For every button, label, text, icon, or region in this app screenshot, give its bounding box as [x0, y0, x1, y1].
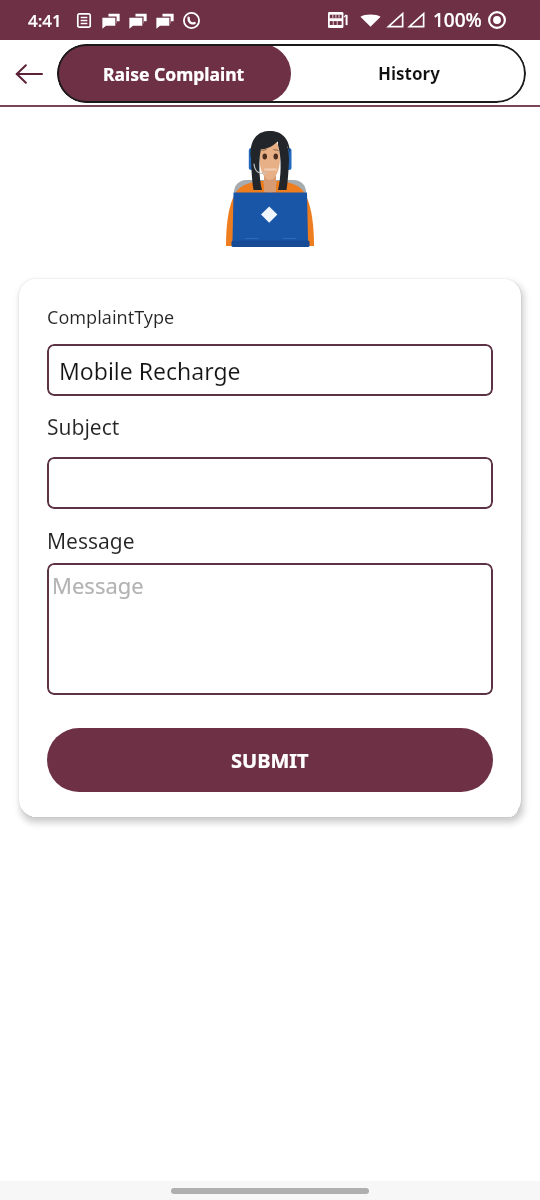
staticText: Raise Complaint — [103, 62, 245, 86]
button[interactable]: Raise Complaint — [57, 44, 291, 103]
staticText: 4:41 — [28, 9, 62, 32]
staticText: Message — [47, 527, 135, 556]
button[interactable]: SUBMIT — [47, 728, 493, 792]
button[interactable]: Complaint type — [47, 344, 493, 396]
staticText: Mobile Recharge — [59, 355, 241, 386]
button[interactable]: Subject — [47, 457, 493, 509]
staticText: SUBMIT — [231, 747, 309, 774]
button[interactable]: History — [291, 44, 526, 103]
button[interactable]: Back — [0, 40, 57, 107]
staticText: ComplaintType — [47, 305, 175, 330]
button[interactable]: Message — [47, 563, 493, 695]
staticText: 100% — [433, 7, 482, 33]
staticText: History — [378, 62, 440, 85]
staticText: Subject — [47, 413, 120, 442]
staticText: Message — [52, 570, 144, 600]
